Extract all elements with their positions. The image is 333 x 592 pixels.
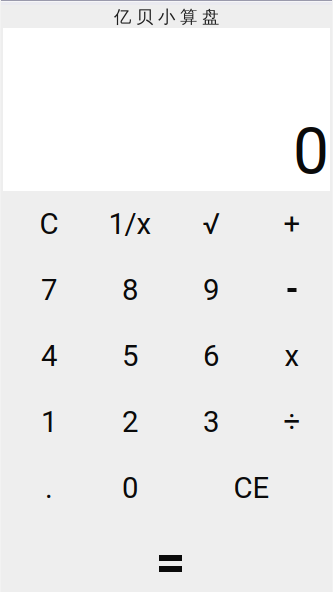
button[interactable]: 0	[89, 455, 170, 521]
button[interactable]: 7	[8, 257, 89, 323]
button[interactable]: √	[170, 191, 251, 257]
staticText: 8	[122, 273, 138, 307]
staticText: 3	[203, 405, 219, 439]
button[interactable]: Minus	[251, 257, 332, 323]
staticText: 6	[203, 339, 219, 373]
button[interactable]: 5	[89, 323, 170, 389]
button[interactable]: ÷	[251, 389, 332, 455]
staticText: 2	[122, 405, 138, 439]
button[interactable]: .	[8, 455, 89, 521]
staticText: 1/x	[108, 207, 151, 241]
staticText: C	[39, 207, 58, 241]
button[interactable]: 9	[170, 257, 251, 323]
staticText: 5	[122, 339, 138, 373]
button[interactable]: C	[8, 191, 89, 257]
button[interactable]: 4	[8, 323, 89, 389]
button[interactable]: 3	[170, 389, 251, 455]
staticText: 0	[122, 471, 138, 505]
button[interactable]: 6	[170, 323, 251, 389]
staticText: 0	[293, 114, 329, 189]
button[interactable]: 8	[89, 257, 170, 323]
staticText: x	[284, 339, 299, 373]
staticText: 1	[41, 405, 57, 439]
staticText: 9	[203, 273, 219, 307]
staticText: 7	[41, 273, 57, 307]
button[interactable]: +	[251, 191, 332, 257]
staticText: +	[283, 207, 300, 241]
button[interactable]: 1	[8, 389, 89, 455]
staticText: .	[45, 471, 53, 505]
staticText: CE	[233, 471, 269, 505]
button[interactable]: 1/x	[89, 191, 170, 257]
button[interactable]: x	[251, 323, 332, 389]
button[interactable]: Equals	[8, 521, 333, 592]
staticText: 亿 贝 小 算 盘	[114, 6, 219, 28]
staticText: ÷	[283, 405, 300, 439]
staticText: 4	[41, 339, 57, 373]
staticText: √	[202, 207, 219, 241]
button[interactable]: 2	[89, 389, 170, 455]
button[interactable]: CE	[170, 455, 332, 521]
